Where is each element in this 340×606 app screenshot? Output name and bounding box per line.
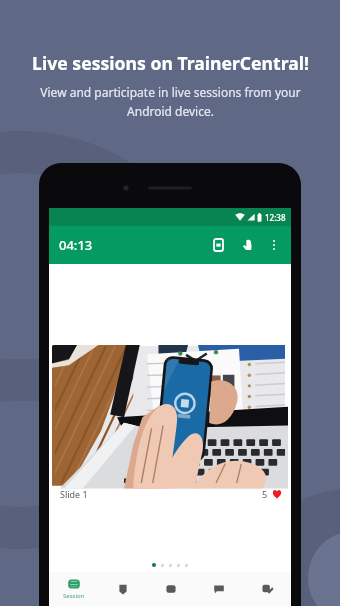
staticText: Session	[63, 592, 85, 600]
staticText: Live sessions on TrainerCentral!	[32, 51, 309, 75]
staticText: 12:38	[265, 212, 286, 223]
staticText: Slide 1	[60, 488, 88, 500]
button[interactable]: Session	[49, 572, 98, 606]
staticText: 04:13	[59, 236, 93, 254]
button[interactable]: Tab 1	[98, 572, 147, 606]
button[interactable]: Tab 3	[195, 572, 243, 606]
button[interactable]: More options	[263, 234, 285, 256]
staticText: View and participate in live sessions fr…	[40, 84, 301, 119]
button[interactable]: Tab 4	[243, 572, 291, 606]
staticText: 5	[262, 488, 268, 500]
button[interactable]: Screen share	[207, 234, 229, 256]
button[interactable]: Raise hand	[237, 234, 259, 256]
button[interactable]: Tab 2	[147, 572, 195, 606]
button[interactable]: Slide 1	[52, 345, 288, 504]
